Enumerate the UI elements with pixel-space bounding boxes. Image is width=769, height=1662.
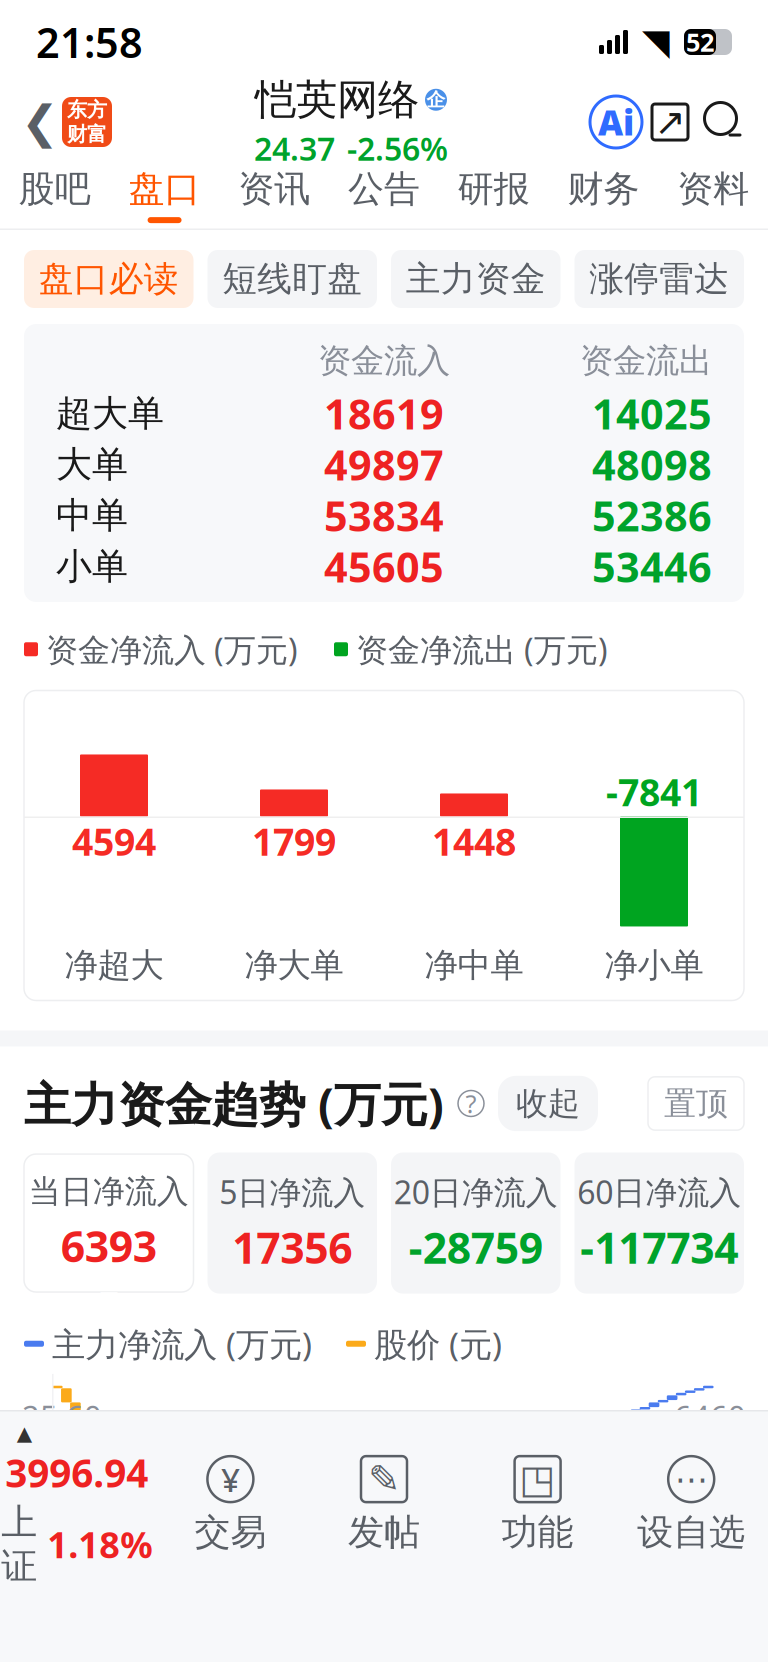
staticText: -1643 — [664, 1531, 746, 1572]
staticText: 中单 — [56, 493, 128, 538]
staticText: 资金流入 — [318, 340, 450, 381]
staticText: -28759 — [409, 1219, 543, 1276]
staticText: 1799 — [252, 816, 336, 866]
button[interactable]: ⋯ — [614, 1456, 768, 1554]
staticText: 60日净流入 — [577, 1170, 741, 1213]
staticText: 45605 — [324, 539, 444, 594]
button[interactable]: 5日净流入 — [207, 1152, 377, 1308]
staticText: 财富 — [67, 122, 107, 147]
button[interactable]: 盘口 — [110, 160, 219, 230]
staticText: ? — [465, 1087, 476, 1120]
staticText: 净中单 — [424, 945, 523, 986]
button[interactable]: 股吧 — [0, 160, 110, 230]
staticText: 主力资金 — [406, 258, 546, 300]
staticText: ▲ — [17, 1422, 32, 1445]
button[interactable]: 财务 — [549, 160, 658, 230]
button[interactable]: 上证指数 — [0, 1422, 154, 1588]
staticText: 发帖 — [348, 1510, 420, 1554]
staticText: 25.60 — [22, 1395, 102, 1436]
staticText: 24.41 — [22, 1531, 102, 1572]
staticText: ¥ — [221, 1457, 240, 1501]
button[interactable]: 主力资金 — [391, 250, 560, 308]
staticText: 2408 — [674, 1463, 746, 1504]
button[interactable]: ✎ — [307, 1456, 461, 1554]
button[interactable]: 当日净流入 — [24, 1154, 193, 1306]
button[interactable]: 盘口必读 — [24, 250, 193, 308]
button[interactable]: ¥ — [154, 1456, 307, 1554]
staticText: 53834 — [324, 488, 444, 543]
staticText: 恺英网络 — [255, 74, 419, 125]
staticText: 净小单 — [604, 945, 703, 986]
staticText: 研报 — [458, 167, 530, 211]
staticText: 当日净流入 — [29, 1172, 189, 1211]
button[interactable]: 短线盯盘 — [207, 250, 377, 308]
button[interactable]: 置顶 — [648, 1077, 744, 1130]
staticText: 主力资金趋势 (万元) — [24, 1072, 444, 1134]
staticText — [473, 1286, 479, 1316]
staticText: 涨停雷达 — [589, 258, 729, 300]
button[interactable]: 研报 — [439, 160, 549, 230]
button[interactable]: AI 助手 — [590, 96, 642, 148]
staticText: 1448 — [432, 816, 516, 866]
staticText: 资讯 — [238, 167, 310, 211]
button[interactable]: ◳ — [461, 1456, 614, 1554]
staticText: ⋯ — [675, 1460, 708, 1498]
staticText: 小单 — [56, 544, 128, 589]
button[interactable]: 20日净流入 — [391, 1152, 560, 1308]
staticText: 财务 — [567, 167, 639, 211]
staticText: 交易 — [194, 1510, 266, 1554]
staticText: Ai — [598, 99, 634, 145]
staticText: 48098 — [592, 437, 712, 492]
staticText: 企 — [426, 88, 445, 111]
button[interactable]: 公告 — [329, 160, 439, 230]
button[interactable]: 涨停雷达 — [574, 250, 744, 308]
button[interactable]: 60日净流入 — [574, 1152, 744, 1308]
staticText: 20日净流入 — [394, 1170, 558, 1213]
button[interactable]: 搜索 — [698, 96, 750, 148]
staticText: 东方 — [67, 97, 107, 122]
staticText: ↗ — [654, 101, 685, 143]
staticText: 1.18% — [47, 1520, 152, 1568]
button[interactable]: 收起 — [498, 1076, 598, 1131]
staticText: -7841 — [606, 767, 702, 816]
staticText: ◥ — [642, 22, 670, 62]
staticText: 收起 — [516, 1084, 580, 1123]
staticText: 短线盯盘 — [222, 258, 362, 300]
staticText: -2.56% — [347, 127, 448, 170]
staticText: 盘口 — [129, 167, 201, 211]
staticText: 大单 — [56, 442, 128, 487]
staticText: 上证 — [1, 1500, 37, 1588]
staticText: 功能 — [502, 1510, 574, 1554]
staticText: 3996.94 — [5, 1447, 148, 1498]
button[interactable]: 返回 — [18, 92, 62, 152]
staticText: 资料 — [677, 167, 749, 211]
staticText: 5日净流入 — [219, 1170, 365, 1213]
staticText: 资金流出 — [580, 340, 712, 381]
staticText: 21:58 — [36, 15, 143, 69]
staticText: 49897 — [324, 437, 444, 492]
staticText: ✎ — [368, 1457, 400, 1501]
button[interactable]: 分享 — [642, 94, 698, 150]
button[interactable]: 东方财富 — [62, 97, 112, 147]
staticText: 超大单 — [56, 391, 164, 436]
staticText — [289, 1286, 295, 1316]
staticText: 置顶 — [664, 1084, 728, 1123]
staticText: 公告 — [348, 167, 420, 211]
staticText: 6460 — [674, 1395, 746, 1436]
staticText — [656, 1286, 662, 1316]
staticText: 25.00 — [22, 1463, 102, 1504]
staticText: 股吧 — [19, 167, 91, 211]
button[interactable]: 资讯 — [219, 160, 329, 230]
button[interactable]: 资料 — [658, 160, 768, 230]
staticText: -117734 — [580, 1219, 738, 1276]
staticText: ❮ — [21, 96, 59, 148]
staticText: 6393 — [61, 1217, 157, 1274]
staticText: 净大单 — [244, 945, 343, 986]
staticText: 主力净流入 (万元) — [52, 1322, 312, 1366]
staticText: 52386 — [592, 488, 712, 543]
staticText: 净超大 — [64, 945, 163, 986]
staticText: 24.37 — [254, 127, 335, 170]
